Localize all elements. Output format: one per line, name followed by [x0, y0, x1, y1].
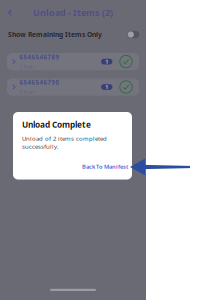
staticText: Chair: [20, 62, 35, 70]
button[interactable]: Show Remaining Items Only: [127, 31, 139, 38]
staticText: 1: [105, 83, 108, 91]
button[interactable]: 6546546790: [7, 78, 139, 96]
staticText: Unload Complete: [22, 119, 91, 130]
staticText: 6546546789: [20, 53, 60, 61]
staticText: Unload - Items (2): [33, 6, 113, 19]
button[interactable]: 6546546789: [7, 53, 139, 70]
staticText: Show Remaining Items Only: [8, 30, 102, 39]
staticText: 6546546790: [20, 78, 60, 87]
staticText: Chair: [20, 88, 35, 96]
staticText: Unload of 2 items completed successfully…: [22, 134, 107, 151]
button[interactable]: Back To Manifest: [81, 160, 129, 173]
staticText: 1: [105, 58, 108, 65]
staticText: Back To Manifest: [82, 163, 128, 170]
